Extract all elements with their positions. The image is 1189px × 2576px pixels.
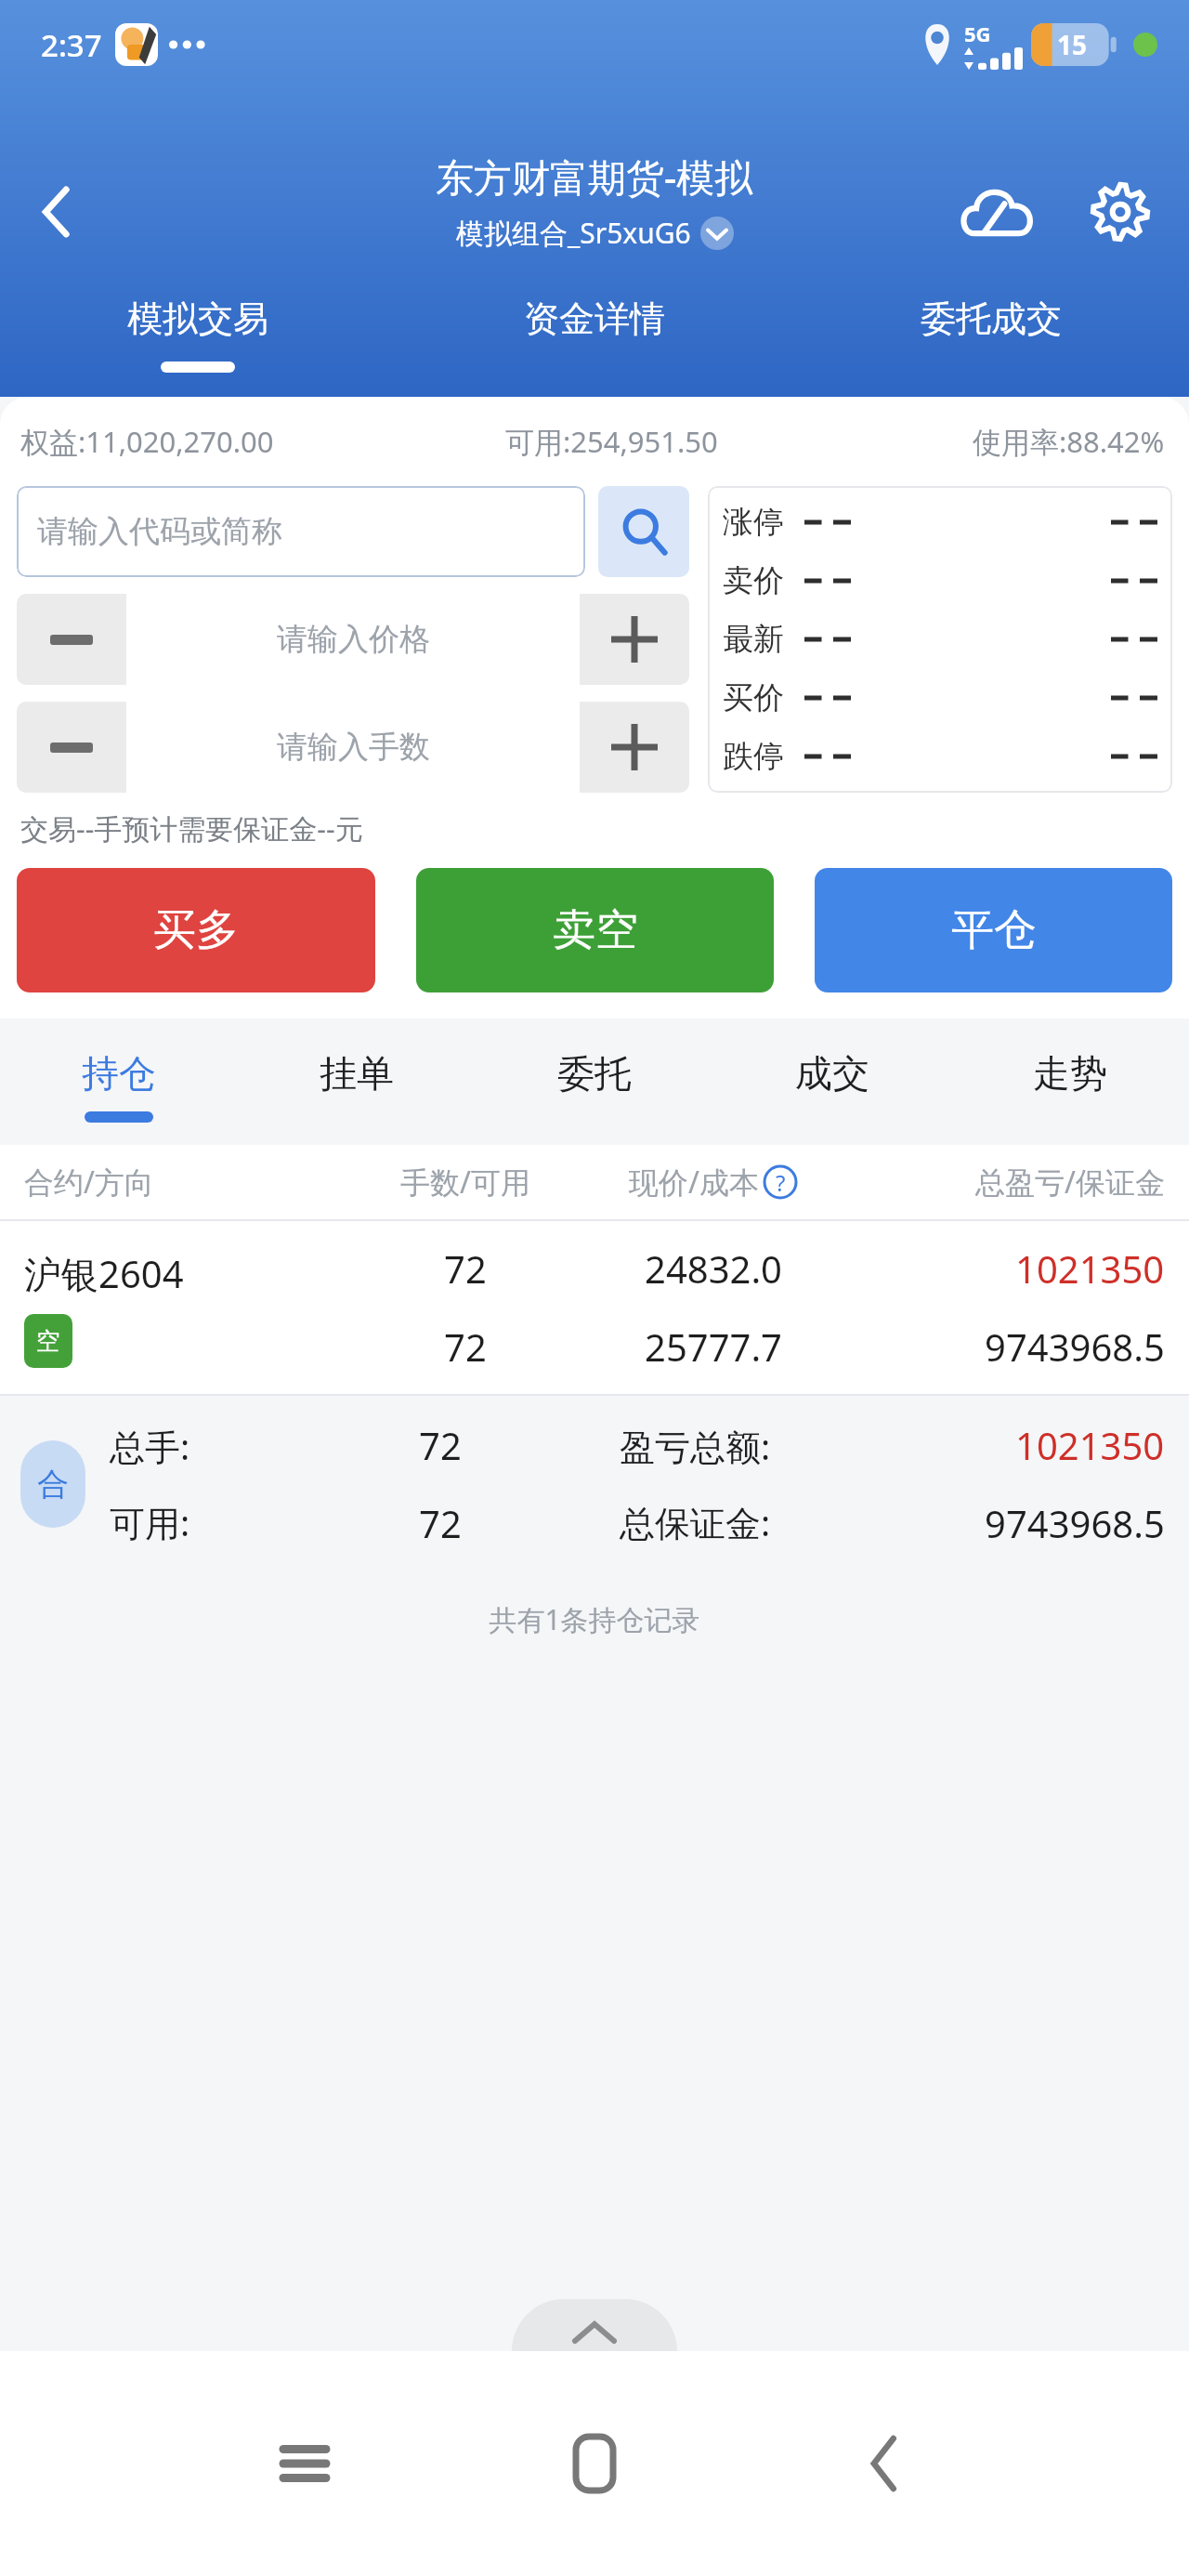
staticText: 1021350 xyxy=(1015,1243,1165,1294)
staticText: 24832.0 xyxy=(645,1243,782,1294)
button[interactable]: 成交 xyxy=(713,1028,951,1145)
staticText: 盈亏总额: xyxy=(620,1422,771,1470)
button[interactable]: Scroll up xyxy=(512,2299,677,2351)
staticText: 跌停 xyxy=(723,737,784,776)
staticText: 沪银2604 xyxy=(24,1248,184,1299)
staticText: ? xyxy=(776,1167,786,1198)
button[interactable]: 买价 xyxy=(723,668,1157,727)
staticText: 15 xyxy=(1057,27,1088,62)
staticText: 空 xyxy=(36,1326,60,1357)
staticText: 可用: xyxy=(110,1498,190,1546)
staticText: 总手: xyxy=(110,1422,190,1470)
button[interactable]: 请输入代码或简称 xyxy=(17,486,585,577)
button[interactable]: 模拟交易 xyxy=(0,274,396,397)
staticText: 模拟交易 xyxy=(127,296,268,341)
staticText: 1021350 xyxy=(1015,1420,1165,1470)
staticText: 权益:11,020,270.00 xyxy=(20,422,274,461)
button[interactable]: Decrease xyxy=(17,702,126,793)
button[interactable]: 挂单 xyxy=(238,1028,476,1145)
button[interactable]: 沪银2604 xyxy=(0,1221,1189,1394)
staticText: 可用:254,951.50 xyxy=(505,422,718,461)
button[interactable]: Search xyxy=(598,486,689,577)
button[interactable]: 买多 xyxy=(17,868,375,992)
button[interactable]: 委托 xyxy=(476,1028,713,1145)
staticText: 走势 xyxy=(1033,1050,1107,1097)
staticText: 9743968.5 xyxy=(985,1321,1165,1372)
staticText: 9743968.5 xyxy=(985,1498,1165,1548)
staticText: 请输入手数 xyxy=(277,728,430,767)
staticText: 卖价 xyxy=(723,561,784,600)
staticText: 手数/可用 xyxy=(358,1162,573,1203)
staticText: 使用率:88.42% xyxy=(973,422,1165,461)
button[interactable]: 走势 xyxy=(951,1028,1189,1145)
staticText: 请输入价格 xyxy=(277,620,430,659)
button[interactable]: 模拟组合_Sr5xuG6 xyxy=(456,214,734,252)
staticText: 合约/方向 xyxy=(24,1162,358,1203)
staticText: 买价 xyxy=(723,678,784,717)
staticText: 合 xyxy=(37,1465,69,1505)
staticText: 72 xyxy=(419,1498,462,1548)
button[interactable]: Recents xyxy=(160,2351,450,2576)
button[interactable]: 请输入价格 xyxy=(126,594,580,685)
button[interactable]: 请输入手数 xyxy=(126,702,580,793)
staticText: 成交 xyxy=(795,1050,869,1097)
button[interactable]: Decrease xyxy=(17,594,126,685)
button[interactable]: Back xyxy=(9,165,102,258)
staticText: 卖空 xyxy=(553,903,638,957)
button[interactable]: Home xyxy=(450,2351,739,2576)
button[interactable]: Increase xyxy=(580,594,689,685)
staticText: 委托成交 xyxy=(921,296,1062,341)
staticText: 资金详情 xyxy=(524,296,665,341)
staticText: 共有1条持仓记录 xyxy=(0,1600,1189,1638)
staticText: 平仓 xyxy=(951,903,1037,957)
staticText: 挂单 xyxy=(320,1050,394,1097)
button[interactable]: 跌停 xyxy=(723,727,1157,785)
staticText: 总盈亏/保证金 xyxy=(853,1162,1165,1203)
staticText: 5G xyxy=(964,20,991,47)
staticText: 持仓 xyxy=(82,1050,156,1097)
button[interactable]: Increase xyxy=(580,702,689,793)
staticText: 委托 xyxy=(557,1050,632,1097)
staticText: 请输入代码或简称 xyxy=(37,512,282,551)
button[interactable]: 平仓 xyxy=(815,868,1172,992)
button[interactable]: 涨停 xyxy=(723,493,1157,551)
button[interactable]: 卖空 xyxy=(416,868,774,992)
button[interactable]: Back xyxy=(739,2351,1029,2576)
staticText: 25777.7 xyxy=(645,1321,782,1372)
staticText: 总保证金: xyxy=(620,1498,771,1546)
staticText: 买多 xyxy=(153,903,239,957)
staticText: 2:37 xyxy=(41,24,102,66)
staticText: 模拟组合_Sr5xuG6 xyxy=(456,214,691,252)
staticText: 72 xyxy=(444,1243,487,1294)
staticText: 72 xyxy=(419,1420,462,1470)
staticText: 交易--手预计需要保证金--元 xyxy=(20,809,363,848)
staticText: 72 xyxy=(444,1321,487,1372)
staticText: 涨停 xyxy=(723,503,784,542)
button[interactable]: 持仓 xyxy=(0,1028,238,1145)
button[interactable]: Settings xyxy=(1072,164,1169,260)
staticText: 现价/成本 xyxy=(629,1162,759,1203)
button[interactable]: 卖价 xyxy=(723,551,1157,610)
button[interactable]: 最新 xyxy=(723,610,1157,668)
button[interactable]: 委托成交 xyxy=(792,274,1189,397)
button[interactable]: 资金详情 xyxy=(396,274,792,397)
staticText: 东方财富期货-模拟 xyxy=(436,151,753,203)
staticText: 最新 xyxy=(723,620,784,659)
button[interactable]: Cloud sync xyxy=(949,164,1046,260)
